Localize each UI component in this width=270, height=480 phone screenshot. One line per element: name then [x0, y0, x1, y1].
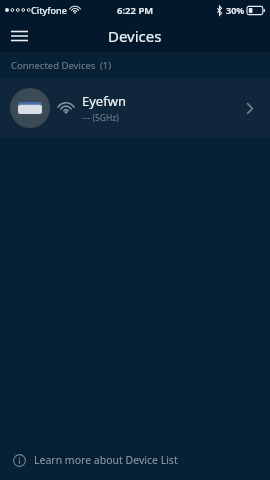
- staticText: Eyefwn: [82, 92, 126, 110]
- staticText: 6:22 PM: [117, 4, 154, 17]
- staticText: Connected Devices: [11, 59, 96, 72]
- button[interactable]: Learn more about Device List: [0, 440, 270, 480]
- staticText: Devices: [108, 26, 162, 46]
- button[interactable]: Menu: [0, 20, 38, 52]
- button[interactable]: Eyefwn: [0, 78, 270, 137]
- staticText: --- (5GHz): [82, 112, 119, 124]
- staticText: Learn more about Device List: [34, 453, 178, 467]
- staticText: (1): [100, 59, 112, 72]
- staticText: 30%: [226, 4, 245, 16]
- staticText: Cityfone: [31, 4, 67, 16]
